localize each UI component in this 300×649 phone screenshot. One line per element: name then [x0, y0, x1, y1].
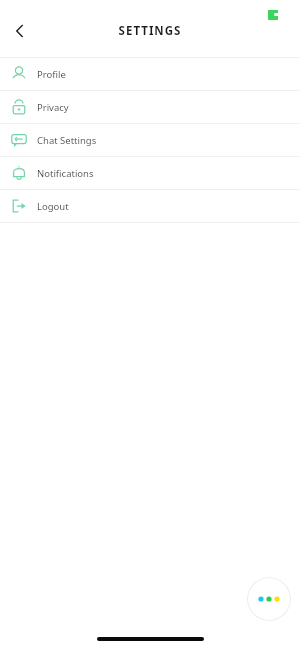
button[interactable]: Privacy: [0, 91, 300, 123]
button[interactable]: Logout: [0, 190, 300, 222]
button[interactable]: Notifications: [0, 157, 300, 189]
button[interactable]: Profile: [0, 58, 300, 90]
staticText: Profile: [37, 68, 66, 81]
button[interactable]: More options: [247, 577, 291, 621]
staticText: SETTINGS: [0, 23, 300, 39]
button[interactable]: Chat Settings: [0, 124, 300, 156]
button[interactable]: Back: [0, 11, 40, 51]
staticText: Logout: [37, 200, 69, 213]
other: App logo: [268, 10, 278, 20]
staticText: Chat Settings: [37, 134, 97, 147]
staticText: Notifications: [37, 167, 94, 180]
staticText: Privacy: [37, 101, 69, 114]
